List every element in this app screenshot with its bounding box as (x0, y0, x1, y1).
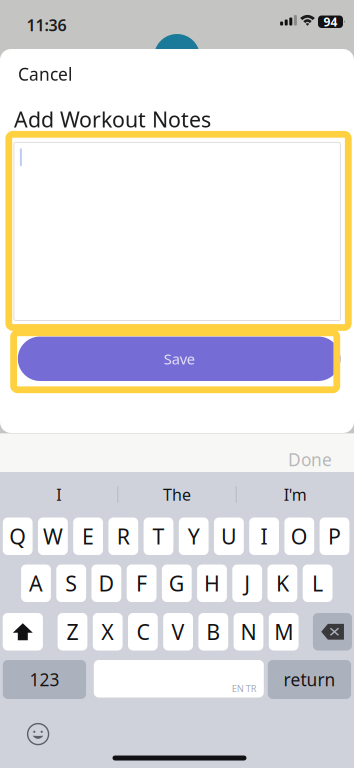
button[interactable]: S (56, 564, 86, 602)
staticText: V (172, 618, 185, 646)
staticText: U (221, 522, 237, 550)
button[interactable]: Delete (313, 613, 352, 650)
button[interactable]: R (108, 517, 138, 555)
button[interactable]: I'm (237, 472, 354, 517)
staticText: 94 (323, 14, 337, 30)
button[interactable]: Z (58, 613, 87, 650)
staticText: S (65, 569, 77, 597)
staticText: Add Workout Notes (14, 105, 211, 127)
staticText: R (117, 522, 130, 550)
button[interactable]: F (127, 564, 156, 602)
button[interactable]: B (198, 613, 228, 650)
button[interactable]: X (93, 613, 123, 650)
staticText: The (163, 484, 191, 505)
staticText: G (169, 569, 185, 597)
button[interactable]: P (320, 517, 349, 555)
staticText: 11:36 (26, 14, 66, 36)
button[interactable]: N (234, 613, 263, 650)
button[interactable]: H (197, 564, 227, 602)
staticText: H (204, 569, 220, 597)
staticText: Z (66, 618, 78, 646)
button[interactable]: A (21, 564, 51, 602)
button[interactable]: return (268, 660, 351, 699)
button[interactable]: V (163, 613, 193, 650)
staticText: C (136, 618, 149, 646)
button[interactable]: Emoji (28, 724, 49, 745)
staticText: M (274, 618, 293, 646)
staticText: N (240, 618, 256, 646)
button[interactable]: E (73, 517, 103, 555)
button[interactable]: L (303, 564, 332, 602)
button[interactable]: T (144, 517, 173, 555)
button[interactable]: Space (94, 660, 264, 697)
staticText: W (43, 522, 63, 550)
button[interactable]: U (214, 517, 244, 555)
staticText: I'm (284, 484, 307, 505)
staticText: I (56, 484, 61, 505)
button[interactable]: I (0, 472, 117, 517)
button[interactable]: I (249, 517, 279, 555)
staticText: D (98, 569, 114, 597)
staticText: P (328, 522, 341, 550)
button[interactable]: D (91, 564, 121, 602)
button[interactable]: J (232, 564, 262, 602)
staticText: E (82, 522, 94, 550)
staticText: B (206, 618, 220, 646)
staticText: J (244, 569, 250, 597)
staticText: Save (164, 349, 195, 368)
staticText: 123 (29, 668, 59, 691)
staticText: EN TR (232, 682, 257, 694)
button[interactable]: 123 (3, 660, 86, 699)
staticText: return (283, 668, 335, 691)
button[interactable]: Done (274, 440, 346, 479)
staticText: I (261, 522, 268, 550)
button[interactable]: Save (18, 336, 340, 381)
staticText: A (29, 569, 43, 597)
button[interactable]: M (269, 613, 299, 650)
staticText: Cancel (18, 62, 72, 85)
button[interactable]: G (162, 564, 192, 602)
staticText: O (291, 522, 308, 550)
button[interactable]: Q (3, 517, 33, 555)
button[interactable]: W (38, 517, 68, 555)
staticText: Y (188, 522, 200, 550)
staticText: Q (9, 522, 26, 550)
button[interactable]: K (267, 564, 297, 602)
staticText: L (312, 569, 323, 597)
button[interactable]: Cancel (0, 58, 120, 90)
button[interactable]: The (118, 472, 236, 517)
staticText: T (152, 522, 164, 550)
staticText: K (276, 569, 289, 597)
button[interactable]: O (284, 517, 314, 555)
staticText: X (101, 618, 114, 646)
button[interactable]: C (128, 613, 158, 650)
staticText: Done (288, 448, 332, 471)
button[interactable]: Shift (3, 613, 43, 650)
staticText: F (136, 569, 147, 597)
button[interactable]: Y (179, 517, 209, 555)
